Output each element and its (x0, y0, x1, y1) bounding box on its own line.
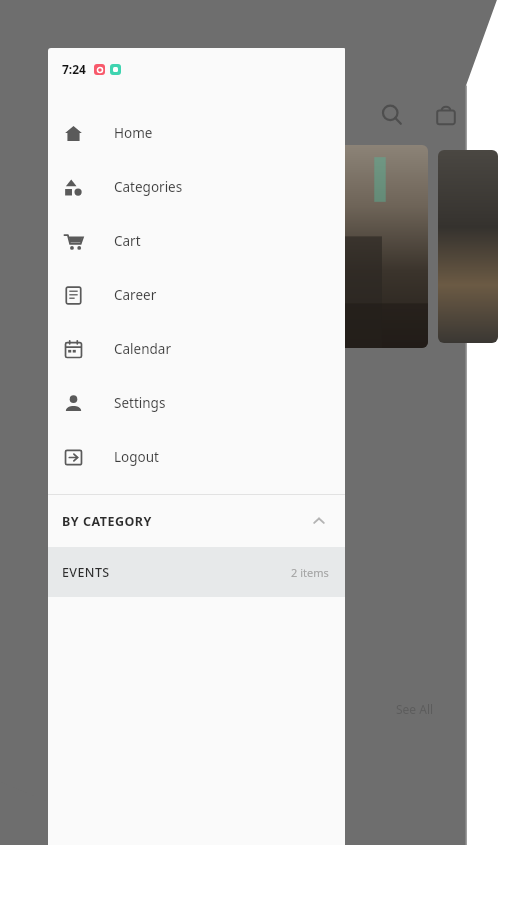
staticText: EVENTS (62, 564, 110, 581)
button[interactable]: Search (375, 98, 409, 132)
button[interactable]: Cart (48, 214, 345, 268)
staticText: Settings (114, 394, 166, 412)
button[interactable]: Home (48, 106, 345, 160)
button[interactable]: EVENTS (48, 547, 345, 597)
button[interactable]: Calendar (48, 322, 345, 376)
staticText: Cart (114, 232, 141, 250)
button[interactable]: Bag (429, 98, 463, 132)
button[interactable] (438, 150, 498, 343)
button[interactable] (300, 145, 428, 348)
staticText: Home (114, 124, 153, 142)
staticText: See All (396, 701, 434, 717)
staticText: 7:24 (62, 61, 86, 77)
staticText: 2 items (291, 565, 329, 580)
button[interactable]: See All (392, 698, 438, 720)
button[interactable]: Logout (48, 430, 345, 484)
staticText: Career (114, 286, 157, 304)
button[interactable]: Career (48, 268, 345, 322)
staticText: Calendar (114, 340, 171, 358)
staticText: Logout (114, 448, 159, 466)
button[interactable]: Settings (48, 376, 345, 430)
button[interactable]: Categories (48, 160, 345, 214)
button[interactable]: BY CATEGORY (48, 495, 345, 547)
staticText: BY CATEGORY (62, 513, 152, 530)
staticText: Categories (114, 178, 183, 196)
